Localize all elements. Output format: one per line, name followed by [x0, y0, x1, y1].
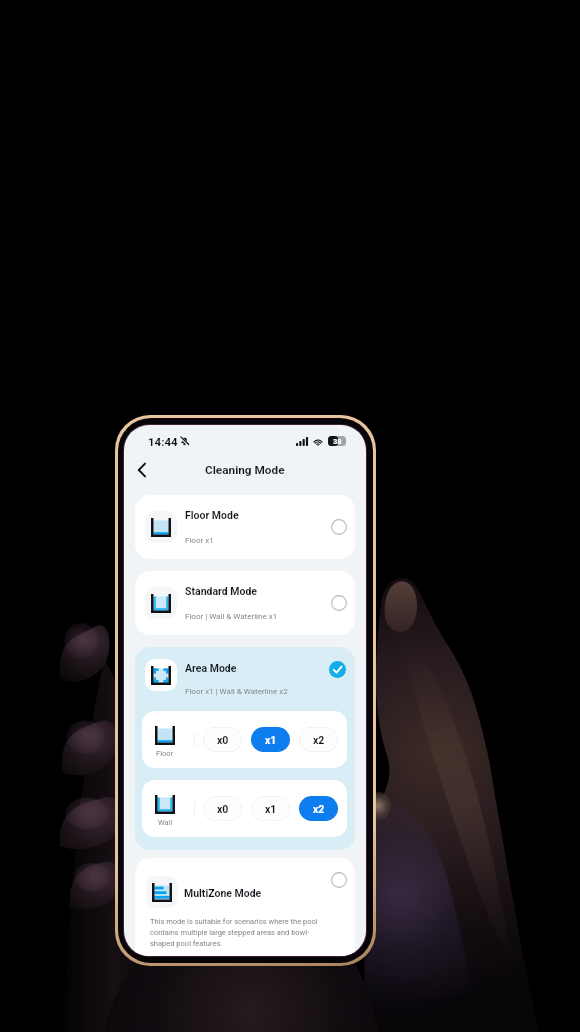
button[interactable]: Floor Mode: [135, 495, 355, 559]
button[interactable]: x1: [251, 727, 290, 752]
staticText: 38: [333, 437, 342, 446]
staticText: Wall: [158, 818, 173, 827]
staticText: Cleaning Mode: [205, 463, 285, 477]
button[interactable]: MultiZone Mode: [135, 858, 355, 956]
staticText: 14:44: [148, 435, 178, 448]
button[interactable]: x0: [203, 796, 242, 821]
staticText: Area Mode: [185, 662, 237, 674]
staticText: Standard Mode: [185, 585, 258, 597]
button[interactable]: Standard Mode: [135, 571, 355, 635]
staticText: Floor x1 | Wall & Waterline x2: [185, 687, 288, 696]
staticText: Floor | Wall & Waterline x1: [185, 612, 278, 621]
staticText: This mode is suitable for scenarios wher…: [150, 917, 321, 948]
staticText: x2: [313, 734, 325, 746]
staticText: x1: [265, 734, 277, 746]
staticText: x0: [217, 734, 229, 746]
staticText: MultiZone Mode: [184, 887, 262, 899]
button[interactable]: Back: [130, 458, 154, 482]
button[interactable]: x2: [299, 727, 338, 752]
button[interactable]: x2: [299, 796, 338, 821]
button[interactable]: x1: [251, 796, 290, 821]
button[interactable]: x0: [203, 727, 242, 752]
staticText: x1: [265, 803, 277, 815]
button[interactable]: Area Mode: [135, 647, 355, 705]
staticText: x2: [313, 803, 325, 815]
staticText: Floor x1: [185, 536, 214, 545]
staticText: x0: [217, 803, 229, 815]
staticText: Floor Mode: [185, 509, 239, 521]
staticText: Floor: [156, 749, 174, 758]
